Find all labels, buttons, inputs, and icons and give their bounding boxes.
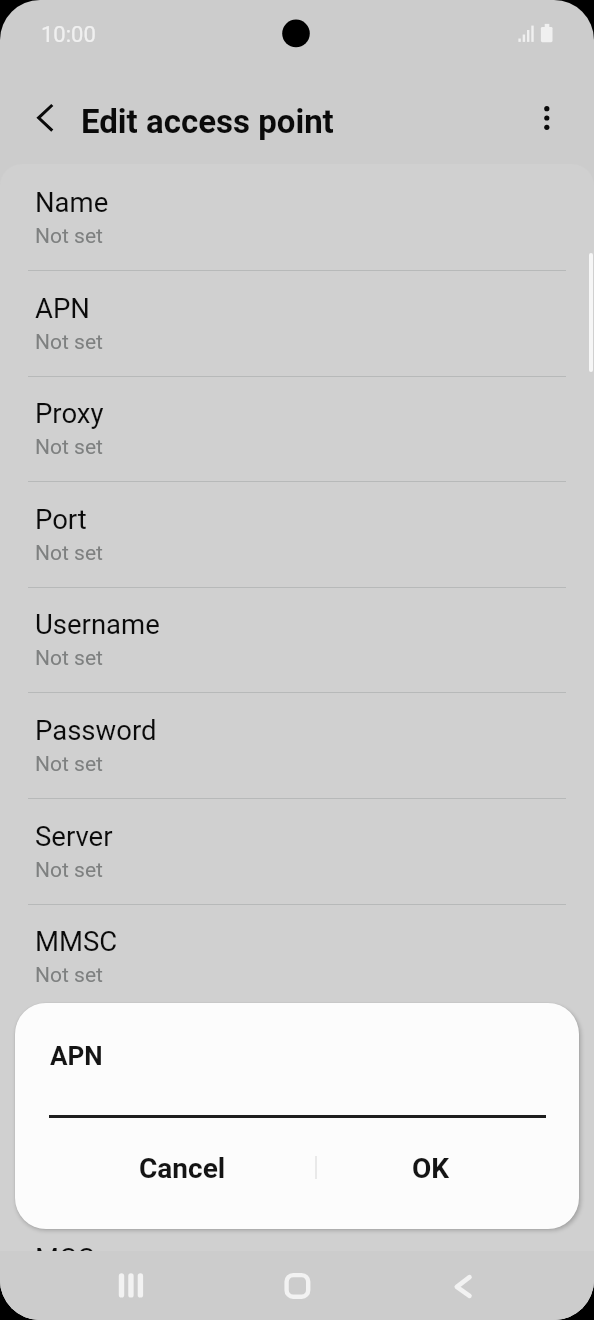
button[interactable]: Name	[0, 164, 594, 270]
button[interactable]: MCC	[0, 1220, 594, 1320]
button[interactable]: Back	[439, 1262, 487, 1310]
staticText: Not set	[35, 435, 103, 460]
button[interactable]: Home	[273, 1262, 321, 1310]
staticText: Cancel	[139, 1152, 226, 1185]
staticText: Not set	[35, 224, 103, 249]
button[interactable]: APN	[0, 270, 594, 376]
staticText: Username	[35, 608, 160, 640]
staticText: Not set	[35, 541, 103, 566]
button[interactable]: Recent apps	[107, 1262, 155, 1310]
staticText: MMS port	[35, 1136, 157, 1168]
button[interactable]: More options	[523, 94, 571, 142]
staticText: Edit access point	[81, 102, 334, 141]
button[interactable]: Server	[0, 798, 594, 904]
staticText: MMSC	[35, 925, 118, 957]
button[interactable]: OK	[317, 1142, 545, 1194]
button[interactable]: MMSC	[0, 903, 594, 1009]
staticText: OK	[412, 1152, 450, 1185]
staticText: Name	[35, 186, 109, 218]
button[interactable]: Password	[0, 692, 594, 798]
button[interactable]: Proxy	[0, 375, 594, 481]
button[interactable]: Cancel	[49, 1142, 316, 1194]
staticText: Not set	[35, 858, 103, 883]
staticText: APN	[50, 1041, 103, 1071]
staticText: MCC	[35, 1242, 95, 1274]
button[interactable]: Back	[20, 94, 68, 142]
staticText: Not set	[35, 752, 103, 777]
staticText: Port	[35, 503, 87, 535]
button[interactable]: Username	[0, 586, 594, 692]
staticText: 10:00	[41, 22, 96, 48]
staticText: Server	[35, 820, 113, 852]
staticText: Password	[35, 714, 157, 746]
staticText: APN	[35, 292, 90, 324]
button[interactable]: Port	[0, 481, 594, 587]
staticText: Proxy	[35, 397, 104, 429]
button[interactable]: MMS port	[0, 1114, 594, 1220]
staticText: Not set	[35, 330, 103, 355]
button[interactable]: MMS proxy	[0, 1009, 594, 1115]
staticText: Not set	[35, 646, 103, 671]
staticText: Not set	[35, 963, 103, 988]
staticText: MMS proxy	[35, 1031, 173, 1063]
